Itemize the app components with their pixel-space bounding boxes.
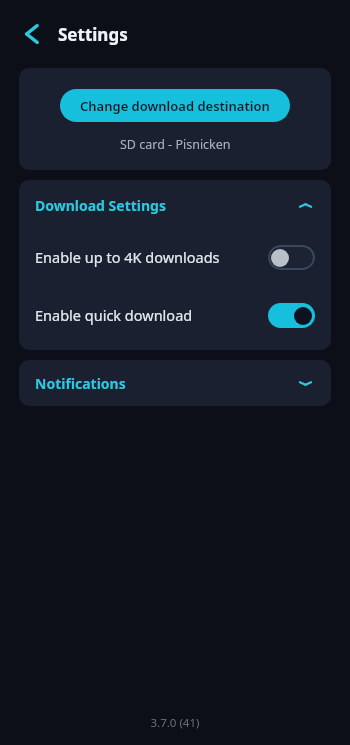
staticText: SD card - Pisnicken [120, 136, 231, 153]
button[interactable] [268, 303, 315, 328]
button[interactable]: Change download destination [60, 89, 290, 122]
staticText: Download Settings [35, 196, 166, 215]
staticText: Notifications [35, 374, 126, 393]
button[interactable]: Download Settings [19, 182, 331, 228]
other: Expand Notifications [293, 371, 317, 395]
staticText: Enable quick download [35, 305, 193, 325]
staticText: Change download destination [80, 97, 270, 115]
other: Collapse Download Settings [293, 193, 317, 217]
button[interactable]: Notifications [19, 360, 331, 406]
button[interactable]: Enable quick download [19, 286, 331, 344]
staticText: Enable up to 4K downloads [35, 247, 220, 267]
staticText: Settings [58, 23, 128, 46]
button[interactable]: Enable up to 4K downloads [19, 228, 331, 286]
button[interactable]: Back [14, 17, 48, 51]
staticText: 3.7.0 (41) [0, 715, 350, 731]
button[interactable] [268, 245, 315, 270]
